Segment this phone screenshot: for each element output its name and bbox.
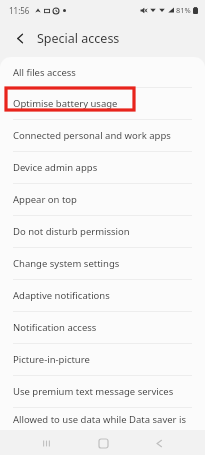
button[interactable]: Appear on top [0,184,205,215]
button[interactable]: Back [148,432,170,454]
staticText: Optimise battery usage [13,97,118,110]
button[interactable]: Notification access [0,312,205,343]
button[interactable]: Do not disturb permission [0,216,205,247]
staticText: Appear on top [13,193,77,206]
staticText: Change system settings [13,257,120,270]
staticText: All files access [13,66,76,79]
button[interactable]: Adaptive notifications [0,280,205,311]
staticText: Connected personal and work apps [13,129,171,142]
staticText: Adaptive notifications [13,289,110,302]
button[interactable]: Allowed to use data while Data saver is [0,408,205,430]
button[interactable]: Use premium text message services [0,376,205,407]
button[interactable]: Home [92,432,114,454]
staticText: 11:56 [9,5,30,16]
staticText: Device admin apps [13,161,98,174]
staticText: Do not disturb permission [13,225,130,238]
button[interactable]: All files access [0,57,205,87]
staticText: Allowed to use data while Data saver is [13,413,186,426]
button[interactable]: Recents [35,432,57,454]
button[interactable]: Device admin apps [0,152,205,183]
staticText: Picture-in-picture [13,353,90,366]
button[interactable]: Picture-in-picture [0,344,205,375]
staticText: Notification access [13,321,97,334]
staticText: 81% [176,5,191,15]
button[interactable]: Change system settings [0,248,205,279]
button[interactable]: Optimise battery usage [0,88,205,119]
staticText: Use premium text message services [13,385,174,398]
button[interactable]: Connected personal and work apps [0,120,205,151]
staticText: Special access [37,30,120,47]
button[interactable]: Back [9,27,31,49]
